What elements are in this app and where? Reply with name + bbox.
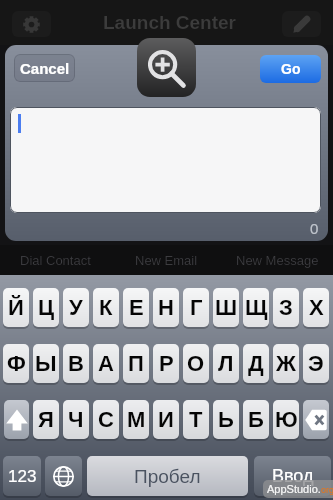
staticText: Е — [129, 295, 144, 320]
staticText: Я — [38, 407, 54, 432]
staticText: Ф — [7, 351, 26, 376]
staticText: Пробел — [134, 466, 201, 487]
button[interactable]: Cancel — [14, 54, 75, 82]
button[interactable]: Х — [303, 288, 329, 327]
staticText: New Email — [135, 253, 198, 268]
button[interactable]: Go — [260, 55, 321, 83]
staticText: И — [158, 407, 174, 432]
staticText: New Message — [236, 253, 319, 268]
staticText: Д — [248, 351, 264, 376]
button[interactable]: П — [123, 344, 149, 383]
button[interactable]: Ь — [213, 400, 239, 439]
staticText: Ч — [68, 407, 84, 432]
staticText: А — [98, 351, 114, 376]
staticText: 123 — [8, 467, 37, 486]
button[interactable]: Т — [183, 400, 209, 439]
button[interactable]: В — [63, 344, 89, 383]
staticText: Л — [218, 351, 234, 376]
button[interactable]: У — [63, 288, 89, 327]
staticText: Щ — [245, 295, 268, 320]
button[interactable]: Е — [123, 288, 149, 327]
staticText: Э — [308, 351, 324, 376]
button[interactable] — [10, 107, 321, 213]
staticText: Launch Center — [103, 12, 237, 33]
button[interactable]: Б — [243, 400, 269, 439]
staticText: Х — [309, 295, 324, 320]
button[interactable]: Settings — [12, 11, 51, 37]
button[interactable]: Shift — [4, 400, 29, 439]
staticText: Ы — [35, 351, 57, 376]
button[interactable]: Ы — [33, 344, 59, 383]
button[interactable]: Change language — [45, 456, 82, 496]
staticText: Go — [281, 61, 301, 77]
staticText: О — [187, 351, 205, 376]
button[interactable]: Н — [153, 288, 179, 327]
button[interactable]: Search — [137, 38, 196, 97]
button[interactable]: Edit — [282, 11, 321, 37]
button[interactable]: Э — [303, 344, 329, 383]
button[interactable]: Ю — [273, 400, 299, 439]
staticText: З — [279, 295, 293, 320]
staticText: Ц — [38, 295, 55, 320]
button[interactable]: Л — [213, 344, 239, 383]
staticText: Т — [189, 407, 203, 432]
button[interactable]: Пробел — [87, 456, 248, 496]
button[interactable]: Ввод — [254, 456, 331, 496]
button[interactable]: А — [93, 344, 119, 383]
staticText: Й — [8, 295, 24, 320]
staticText: Ж — [276, 351, 296, 376]
staticText: Б — [248, 407, 264, 432]
button[interactable]: И — [153, 400, 179, 439]
staticText: Cancel — [20, 60, 70, 77]
staticText: Ю — [275, 407, 298, 432]
button[interactable]: Dial Contact — [0, 245, 111, 275]
staticText: org — [321, 485, 333, 495]
button[interactable]: Backspace — [303, 400, 329, 439]
button[interactable]: М — [123, 400, 149, 439]
staticText: Г — [190, 295, 203, 320]
button[interactable]: Д — [243, 344, 269, 383]
button[interactable]: New Email — [111, 245, 222, 275]
staticText: В — [68, 351, 84, 376]
staticText: AppStudio. — [267, 483, 321, 495]
staticText: С — [98, 407, 114, 432]
button[interactable]: Ф — [3, 344, 29, 383]
button[interactable]: Щ — [243, 288, 269, 327]
button[interactable]: Й — [3, 288, 29, 327]
button[interactable]: Г — [183, 288, 209, 327]
button[interactable]: С — [93, 400, 119, 439]
staticText: П — [128, 351, 144, 376]
staticText: М — [127, 407, 146, 432]
button[interactable]: Ч — [63, 400, 89, 439]
button[interactable]: Ш — [213, 288, 239, 327]
staticText: Ь — [218, 407, 234, 432]
button[interactable]: Ц — [33, 288, 59, 327]
staticText: 0 — [310, 220, 319, 237]
button[interactable]: З — [273, 288, 299, 327]
staticText: У — [69, 295, 83, 320]
staticText: К — [99, 295, 113, 320]
staticText: Ввод — [272, 466, 314, 486]
staticText: Ш — [215, 295, 238, 320]
button[interactable]: О — [183, 344, 209, 383]
staticText: Dial Contact — [20, 253, 91, 268]
button[interactable]: New Message — [222, 245, 333, 275]
staticText: Р — [159, 351, 174, 376]
button[interactable]: Р — [153, 344, 179, 383]
button[interactable]: Ж — [273, 344, 299, 383]
button[interactable]: К — [93, 288, 119, 327]
staticText: Н — [158, 295, 174, 320]
button[interactable]: 123 — [3, 456, 41, 496]
button[interactable]: Я — [33, 400, 59, 439]
